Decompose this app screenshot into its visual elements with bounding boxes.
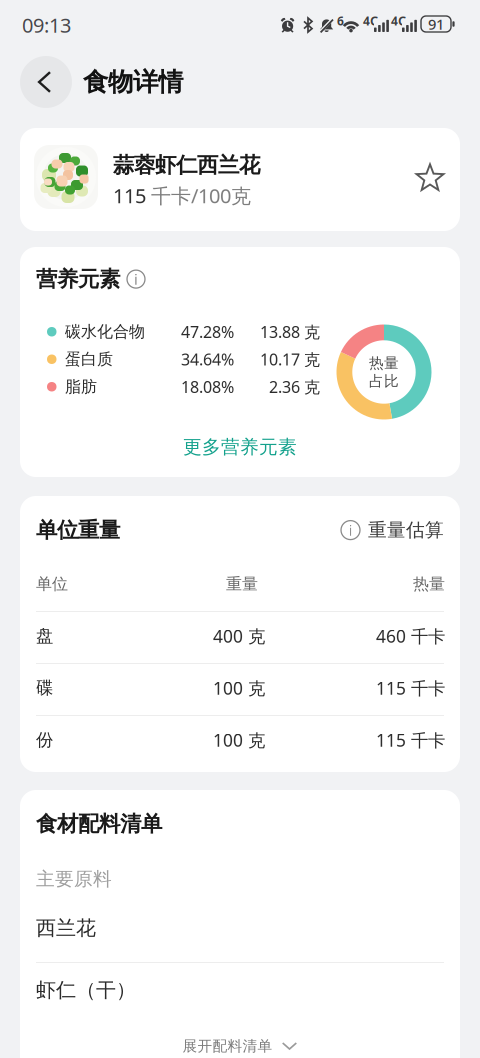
- staticText: 份: [36, 729, 53, 751]
- staticText: 47.28%: [181, 321, 234, 342]
- staticText: 营养元素: [36, 266, 120, 292]
- staticText: 重量: [226, 574, 258, 594]
- staticText: 115 千卡: [376, 728, 445, 751]
- staticText: 西兰花: [36, 916, 96, 940]
- staticText: 34.64%: [181, 349, 234, 370]
- staticText: 千卡/100克: [151, 182, 251, 209]
- staticText: 热量: [369, 354, 399, 372]
- staticText: 更多营养元素: [183, 435, 297, 458]
- staticText: 盘: [36, 625, 53, 647]
- staticText: 重量估算: [368, 519, 444, 541]
- staticText: 单位重量: [36, 517, 120, 543]
- button[interactable]: 更多营养元素: [160, 432, 320, 462]
- staticText: 400 克: [213, 624, 265, 647]
- staticText: 115: [113, 182, 151, 209]
- staticText: 13.88 克: [260, 321, 320, 342]
- staticText: i: [348, 520, 352, 540]
- staticText: 脂肪: [65, 377, 97, 397]
- staticText: i: [134, 269, 138, 289]
- button[interactable]: Back: [20, 56, 72, 108]
- staticText: 碟: [36, 677, 53, 699]
- staticText: 蛋白质: [65, 349, 113, 369]
- staticText: 蒜蓉虾仁西兰花: [113, 152, 260, 178]
- staticText: 热量: [413, 574, 445, 594]
- staticText: 单位: [36, 574, 68, 594]
- staticText: 食材配料清单: [36, 811, 162, 837]
- staticText: 占比: [369, 372, 399, 390]
- staticText: 主要原料: [36, 867, 112, 890]
- button[interactable]: 蒜蓉虾仁西兰花: [20, 128, 460, 231]
- staticText: 4G: [363, 13, 379, 29]
- staticText: 460 千卡: [376, 624, 445, 647]
- staticText: 4G: [391, 13, 407, 29]
- staticText: 虾仁（干）: [36, 978, 136, 1002]
- staticText: 展开配料清单: [182, 1037, 272, 1055]
- staticText: 10.17 克: [260, 349, 320, 370]
- staticText: 6: [337, 13, 344, 29]
- staticText: 100 克: [213, 676, 265, 699]
- staticText: 115 千卡: [376, 676, 445, 699]
- staticText: 18.08%: [181, 376, 234, 397]
- staticText: 09:13: [22, 12, 71, 38]
- staticText: 91: [428, 14, 444, 34]
- staticText: 100 克: [213, 728, 265, 751]
- staticText: 食物详情: [83, 66, 183, 97]
- staticText: 碳水化合物: [65, 322, 145, 342]
- button[interactable]: i: [341, 519, 444, 541]
- staticText: 2.36 克: [269, 376, 320, 397]
- button[interactable]: 展开配料清单: [140, 1033, 340, 1058]
